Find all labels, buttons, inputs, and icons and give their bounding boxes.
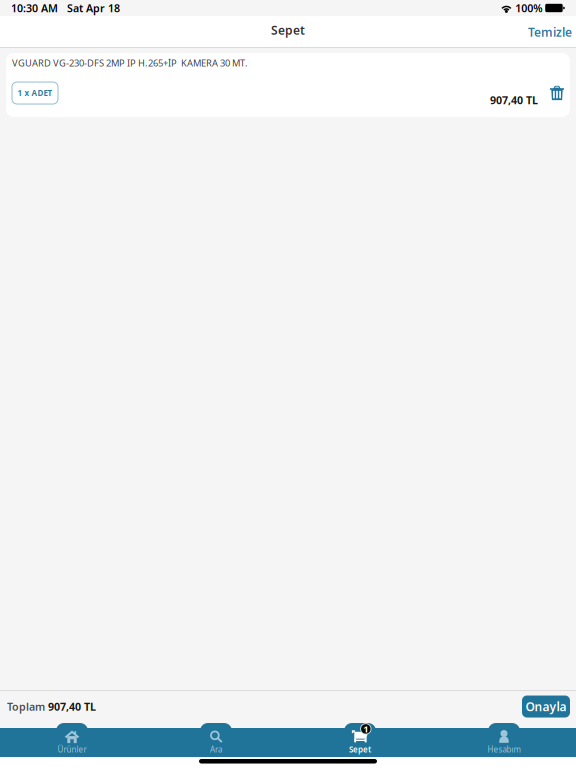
button[interactable]: Ara (144, 723, 288, 757)
button[interactable]: 1 (288, 723, 432, 757)
staticText: Ürünler (57, 744, 86, 755)
staticText: Onayla (525, 698, 566, 714)
staticText: 100% (512, 1, 542, 15)
staticText: Temizle (528, 24, 572, 40)
staticText: Ara (210, 744, 222, 755)
button[interactable]: 1 x ADET (12, 82, 58, 104)
staticText: 907,40 TL (490, 93, 538, 107)
button[interactable]: Onayla (522, 695, 570, 717)
staticText: 1 x ADET (17, 88, 52, 98)
staticText: 907,40 TL (48, 699, 96, 714)
staticText: Sepet (271, 22, 305, 38)
staticText: 10:30 AM Sat Apr 18 (11, 1, 120, 15)
staticText: Hesabım (487, 744, 520, 755)
staticText: Sepet (349, 744, 371, 755)
staticText: VGUARD VG-230-DFS 2MP IP H.265+İP KAMERA… (12, 57, 248, 69)
button[interactable]: Ürünü sil (550, 82, 564, 104)
button[interactable]: Temizle (528, 16, 576, 48)
staticText: Toplam (7, 699, 48, 714)
button[interactable]: Hesabım (432, 723, 576, 757)
staticText: 1 (363, 723, 368, 735)
button[interactable]: Ürünler (0, 723, 144, 757)
